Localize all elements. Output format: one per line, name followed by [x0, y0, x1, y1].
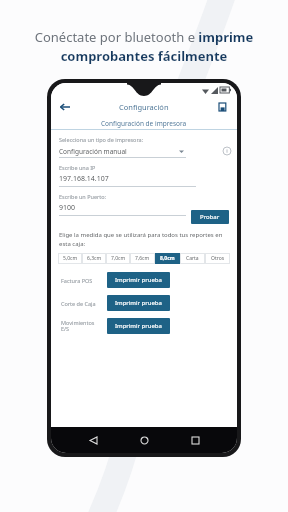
button[interactable]: 8,0cm	[155, 253, 180, 264]
staticText: Configuración	[119, 102, 169, 112]
staticText: Imprimir prueba	[115, 299, 162, 307]
staticText: Imprimir prueba	[115, 276, 162, 284]
staticText: 197.168.14.107	[59, 174, 109, 184]
button[interactable]: Imprimir prueba	[107, 295, 170, 311]
staticText: Selecciona un tipo de impresora:	[59, 136, 144, 143]
button[interactable]: Carta	[180, 253, 205, 264]
staticText: 8,0cm	[160, 255, 175, 262]
staticText: Movimientos E/S	[61, 319, 107, 333]
staticText: Otros	[211, 255, 225, 262]
staticText: 9100	[59, 203, 76, 213]
staticText: 5,0cm	[63, 255, 78, 262]
button[interactable]: Back	[84, 431, 102, 449]
button[interactable]: Recents	[186, 431, 204, 449]
button[interactable]: Configuración manual	[59, 147, 186, 156]
staticText: Probar	[200, 213, 220, 221]
staticText: Factura POS	[61, 277, 107, 284]
staticText: Imprimir prueba	[115, 322, 162, 330]
button[interactable]: 7,6cm	[130, 253, 155, 264]
button[interactable]: Imprimir prueba	[107, 318, 170, 334]
button[interactable]: 5,0cm	[58, 253, 82, 264]
button[interactable]: 6,3cm	[82, 253, 106, 264]
staticText: Configuración de impresora	[101, 119, 187, 128]
staticText: Elige la medida que se utilizará para to…	[59, 231, 229, 248]
button[interactable]: Save	[216, 100, 230, 114]
staticText: Configuración manual	[59, 147, 127, 156]
button[interactable]: 7,0cm	[106, 253, 130, 264]
button[interactable]: Probar	[191, 210, 229, 224]
staticText: Escribe un Puerto:	[59, 193, 107, 200]
staticText: Escribe una IP	[59, 164, 96, 171]
button[interactable]: Back	[58, 100, 72, 114]
button[interactable]: Info	[222, 146, 232, 156]
button[interactable]: Imprimir prueba	[107, 272, 170, 288]
staticText: 7,0cm	[111, 255, 126, 262]
staticText: Carta	[186, 255, 199, 262]
staticText: Conéctate por bluetooth e imprime compro…	[8, 28, 280, 65]
staticText: 6,3cm	[87, 255, 102, 262]
button[interactable]: Otros	[205, 253, 230, 264]
staticText: Corte de Caja	[61, 300, 107, 307]
button[interactable]: Home	[135, 431, 153, 449]
staticText: 7,6cm	[135, 255, 150, 262]
